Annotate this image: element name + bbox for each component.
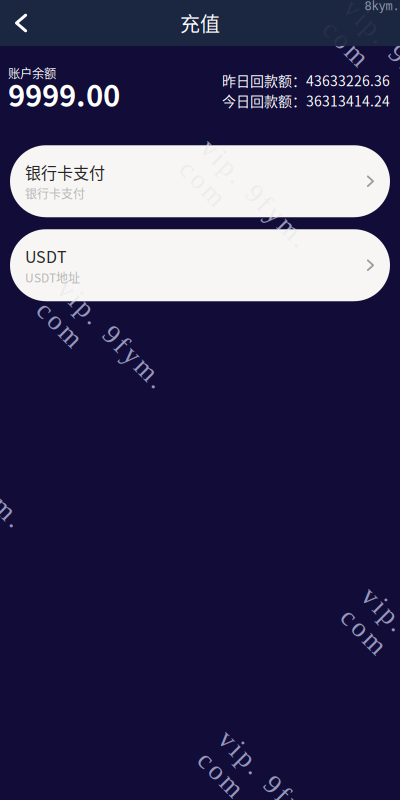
staticText: 账户余额 [8, 64, 56, 82]
staticText: vip. 9fym. com [171, 210, 378, 240]
staticText: 银行卡支付 [25, 160, 105, 184]
staticText: USDT地址 [25, 269, 80, 286]
staticText: 充值 [180, 8, 220, 37]
staticText: USDT [25, 244, 67, 268]
staticText: 9999.00 [8, 73, 120, 115]
staticText: vip. 9fym. com [0, 490, 93, 520]
staticText: vip. 9fym. com [314, 70, 400, 100]
staticText: vip. 9fym. com [28, 351, 235, 381]
staticText: 昨日回款额：43633226.36 [222, 70, 390, 90]
staticText: vip. 9fym. com [0, 490, 93, 520]
staticText: vip. 9fym. com [171, 210, 378, 240]
button[interactable]: Back [0, 0, 39, 46]
staticText: 今日回款额：36313414.24 [222, 90, 390, 111]
staticText: 银行卡支付 [25, 185, 85, 202]
button[interactable]: USDT [10, 229, 390, 301]
staticText: vip. 9fym. com [314, 70, 400, 100]
staticText: 8kym.me [364, 0, 400, 13]
staticText: vip. 9fym. com [28, 351, 235, 381]
button[interactable]: 银行卡支付 [10, 145, 390, 217]
